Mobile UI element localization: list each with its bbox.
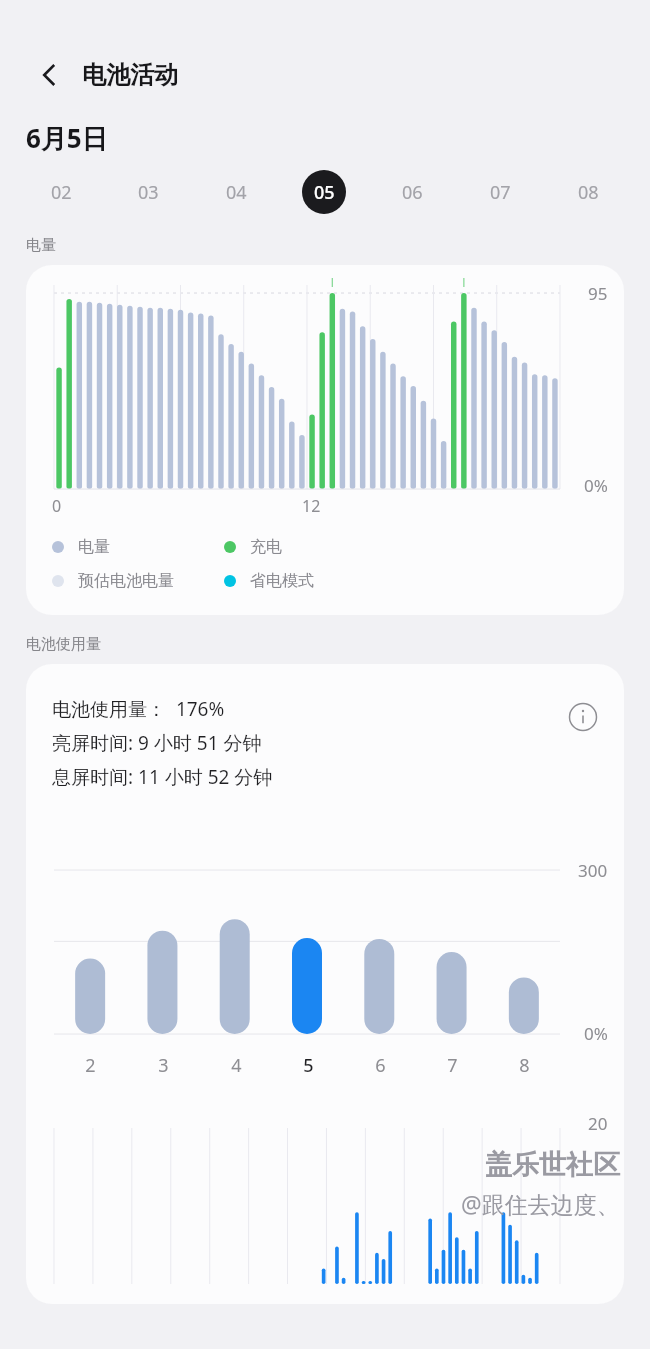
staticText: 省电模式 [250, 571, 314, 591]
staticText: 预估电池电量 [78, 571, 174, 591]
staticText: 3 [158, 1053, 169, 1078]
button[interactable]: 03 [105, 168, 192, 216]
staticText: 06 [402, 180, 423, 205]
button[interactable]: 02 [18, 168, 105, 216]
button[interactable]: 95 [26, 265, 624, 615]
button[interactable]: 07 [456, 168, 544, 216]
button[interactable]: Info [562, 696, 604, 738]
button[interactable]: 08 [544, 168, 632, 216]
staticText: 7 [447, 1053, 458, 1078]
staticText: 6 [375, 1053, 386, 1078]
staticText: @跟住去边度、 [461, 1188, 620, 1219]
staticText: 08 [578, 180, 599, 205]
staticText: 盖乐世社区 [485, 1148, 620, 1182]
staticText: 6月5日 [26, 120, 108, 156]
staticText: 12 [302, 495, 321, 517]
staticText: 8 [519, 1053, 530, 1078]
staticText: 电量 [26, 236, 56, 255]
staticText: 20 [588, 1112, 608, 1135]
staticText: 0 [52, 495, 62, 517]
button[interactable]: Back [28, 54, 70, 96]
staticText: 05 [314, 180, 335, 205]
staticText: 03 [138, 180, 159, 205]
button[interactable]: 04 [192, 168, 280, 216]
staticText: 息屏时间: 11 小时 52 分钟 [52, 764, 273, 790]
button[interactable]: 预估电池电量 [52, 571, 224, 591]
staticText: 300 [578, 859, 608, 882]
staticText: 亮屏时间: 9 小时 51 分钟 [52, 730, 262, 756]
button[interactable]: 06 [368, 168, 456, 216]
staticText: 07 [490, 180, 511, 205]
staticText: 0% [584, 474, 608, 497]
button[interactable]: 电池使用量： 176% [26, 664, 624, 1304]
staticText: 电量 [78, 537, 110, 557]
button[interactable]: 省电模式 [224, 571, 384, 591]
staticText: 0% [584, 1022, 608, 1045]
button[interactable]: 05 [280, 168, 368, 216]
button[interactable]: 电量 [52, 537, 224, 557]
staticText: 4 [231, 1053, 242, 1078]
staticText: 电池使用量 [26, 635, 101, 654]
staticText: 02 [51, 180, 72, 205]
staticText: 04 [226, 180, 247, 205]
button[interactable]: 充电 [224, 537, 384, 557]
staticText: 电池活动 [82, 60, 178, 90]
staticText: 5 [303, 1053, 314, 1078]
staticText: 95 [588, 282, 608, 305]
staticText: 2 [85, 1053, 96, 1078]
staticText: 充电 [250, 537, 282, 557]
staticText: 电池使用量： 176% [52, 696, 225, 722]
